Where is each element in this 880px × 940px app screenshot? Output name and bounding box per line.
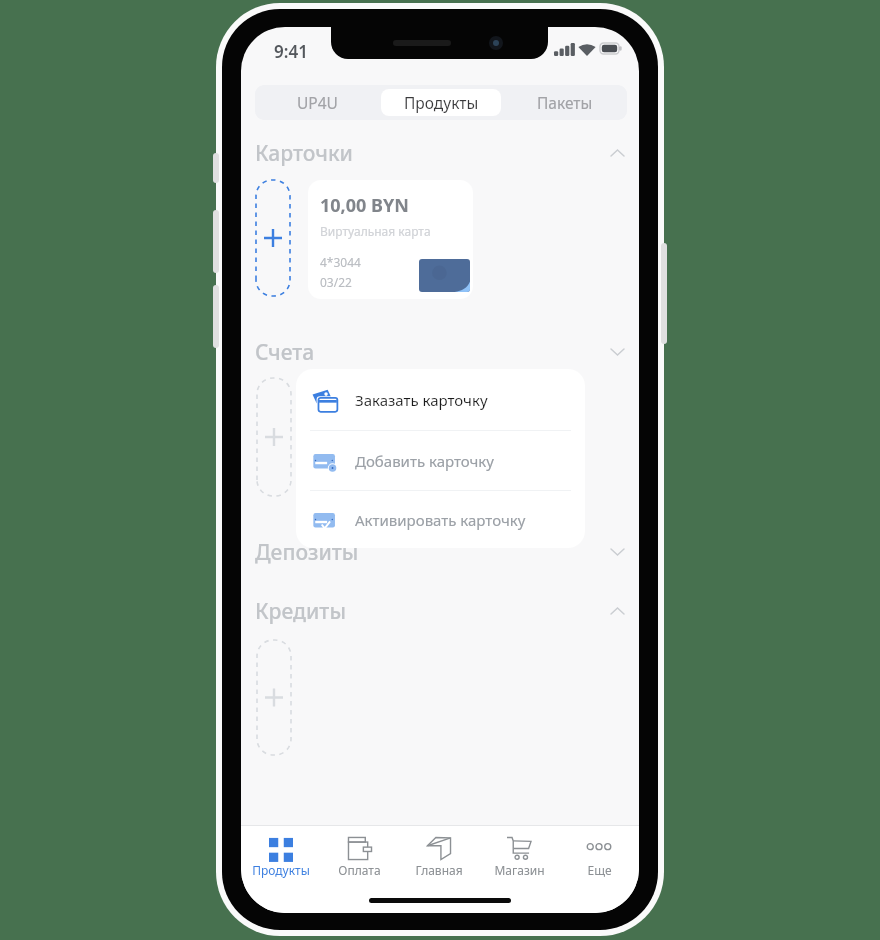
staticText: 4*3044 xyxy=(320,254,361,270)
button[interactable]: Add xyxy=(257,640,291,755)
button[interactable]: Заказать карточку xyxy=(312,369,585,430)
button[interactable]: Счета xyxy=(255,338,624,366)
staticText: 03/22 xyxy=(320,274,352,290)
staticText: Оплата xyxy=(338,862,381,878)
staticText: Продукты xyxy=(252,862,310,878)
staticText: Продукты xyxy=(404,92,479,113)
button[interactable]: Главная xyxy=(399,831,479,883)
button[interactable]: UP4U xyxy=(257,89,377,116)
staticText: Главная xyxy=(415,862,463,878)
staticText: Пакеты xyxy=(537,92,593,113)
button[interactable]: Add xyxy=(257,378,291,496)
staticText: Заказать карточку xyxy=(355,390,488,410)
staticText: UP4U xyxy=(297,92,338,113)
button[interactable]: Пакеты xyxy=(505,89,625,116)
staticText: Добавить карточку xyxy=(355,451,494,471)
staticText: Депозиты xyxy=(255,538,359,566)
staticText: Магазин xyxy=(494,862,545,878)
staticText: Еще xyxy=(587,862,612,878)
button[interactable]: Кредиты xyxy=(255,597,624,625)
staticText: Карточки xyxy=(255,139,353,167)
staticText: 9:41 xyxy=(274,40,308,63)
button[interactable]: Еще xyxy=(559,831,639,883)
button[interactable]: Add xyxy=(256,180,290,296)
staticText: Кредиты xyxy=(255,597,346,625)
button[interactable]: Активировать карточку xyxy=(312,491,585,548)
staticText: Виртуальная карта xyxy=(320,223,431,239)
button[interactable]: Продукты xyxy=(241,831,320,883)
button[interactable]: 10,00 BYN xyxy=(308,180,473,299)
button[interactable]: Добавить карточку xyxy=(312,431,585,490)
button[interactable]: Оплата xyxy=(320,831,399,883)
staticText: 10,00 BYN xyxy=(320,193,409,218)
button[interactable]: Депозиты xyxy=(255,538,624,566)
staticText: Активировать карточку xyxy=(355,510,526,530)
button[interactable]: Продукты xyxy=(381,89,501,116)
staticText: Счета xyxy=(255,338,315,366)
button[interactable]: Карточки xyxy=(255,139,624,167)
button[interactable]: Магазин xyxy=(479,831,559,883)
